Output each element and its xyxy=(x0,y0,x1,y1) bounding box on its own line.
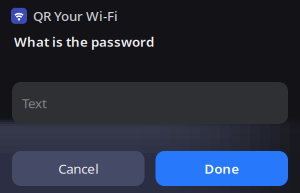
staticText: Cancel xyxy=(58,160,98,177)
button[interactable]: Cancel xyxy=(12,151,144,186)
staticText: What is the password xyxy=(14,33,154,50)
button[interactable]: Done xyxy=(155,151,288,186)
staticText: Text xyxy=(22,94,47,112)
staticText: QR Your Wi-Fi xyxy=(33,7,118,25)
staticText: Done xyxy=(204,160,239,177)
